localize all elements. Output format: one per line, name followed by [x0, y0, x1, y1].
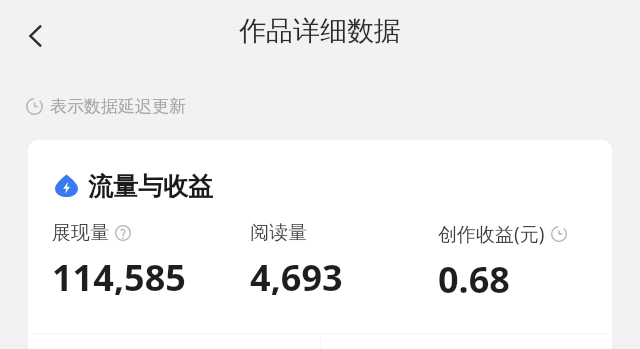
- staticText: 展现量: [52, 221, 109, 245]
- staticText: 阅读量: [250, 221, 307, 245]
- staticText: 作品详细数据: [0, 14, 640, 48]
- staticText: 4,693: [250, 253, 343, 295]
- staticText: 创作收益(元): [438, 221, 545, 247]
- staticText: 0.68: [438, 255, 510, 295]
- button[interactable]: Back: [8, 8, 64, 64]
- staticText: 114,585: [52, 253, 186, 295]
- button[interactable]: 阅读量: [250, 221, 440, 295]
- staticText: 表示数据延迟更新: [50, 96, 186, 117]
- staticText: 流量与收益: [88, 171, 213, 199]
- button[interactable]: 展现量: [52, 221, 242, 295]
- button[interactable]: 创作收益(元): [438, 221, 612, 295]
- button[interactable]: 流量与收益: [55, 171, 612, 199]
